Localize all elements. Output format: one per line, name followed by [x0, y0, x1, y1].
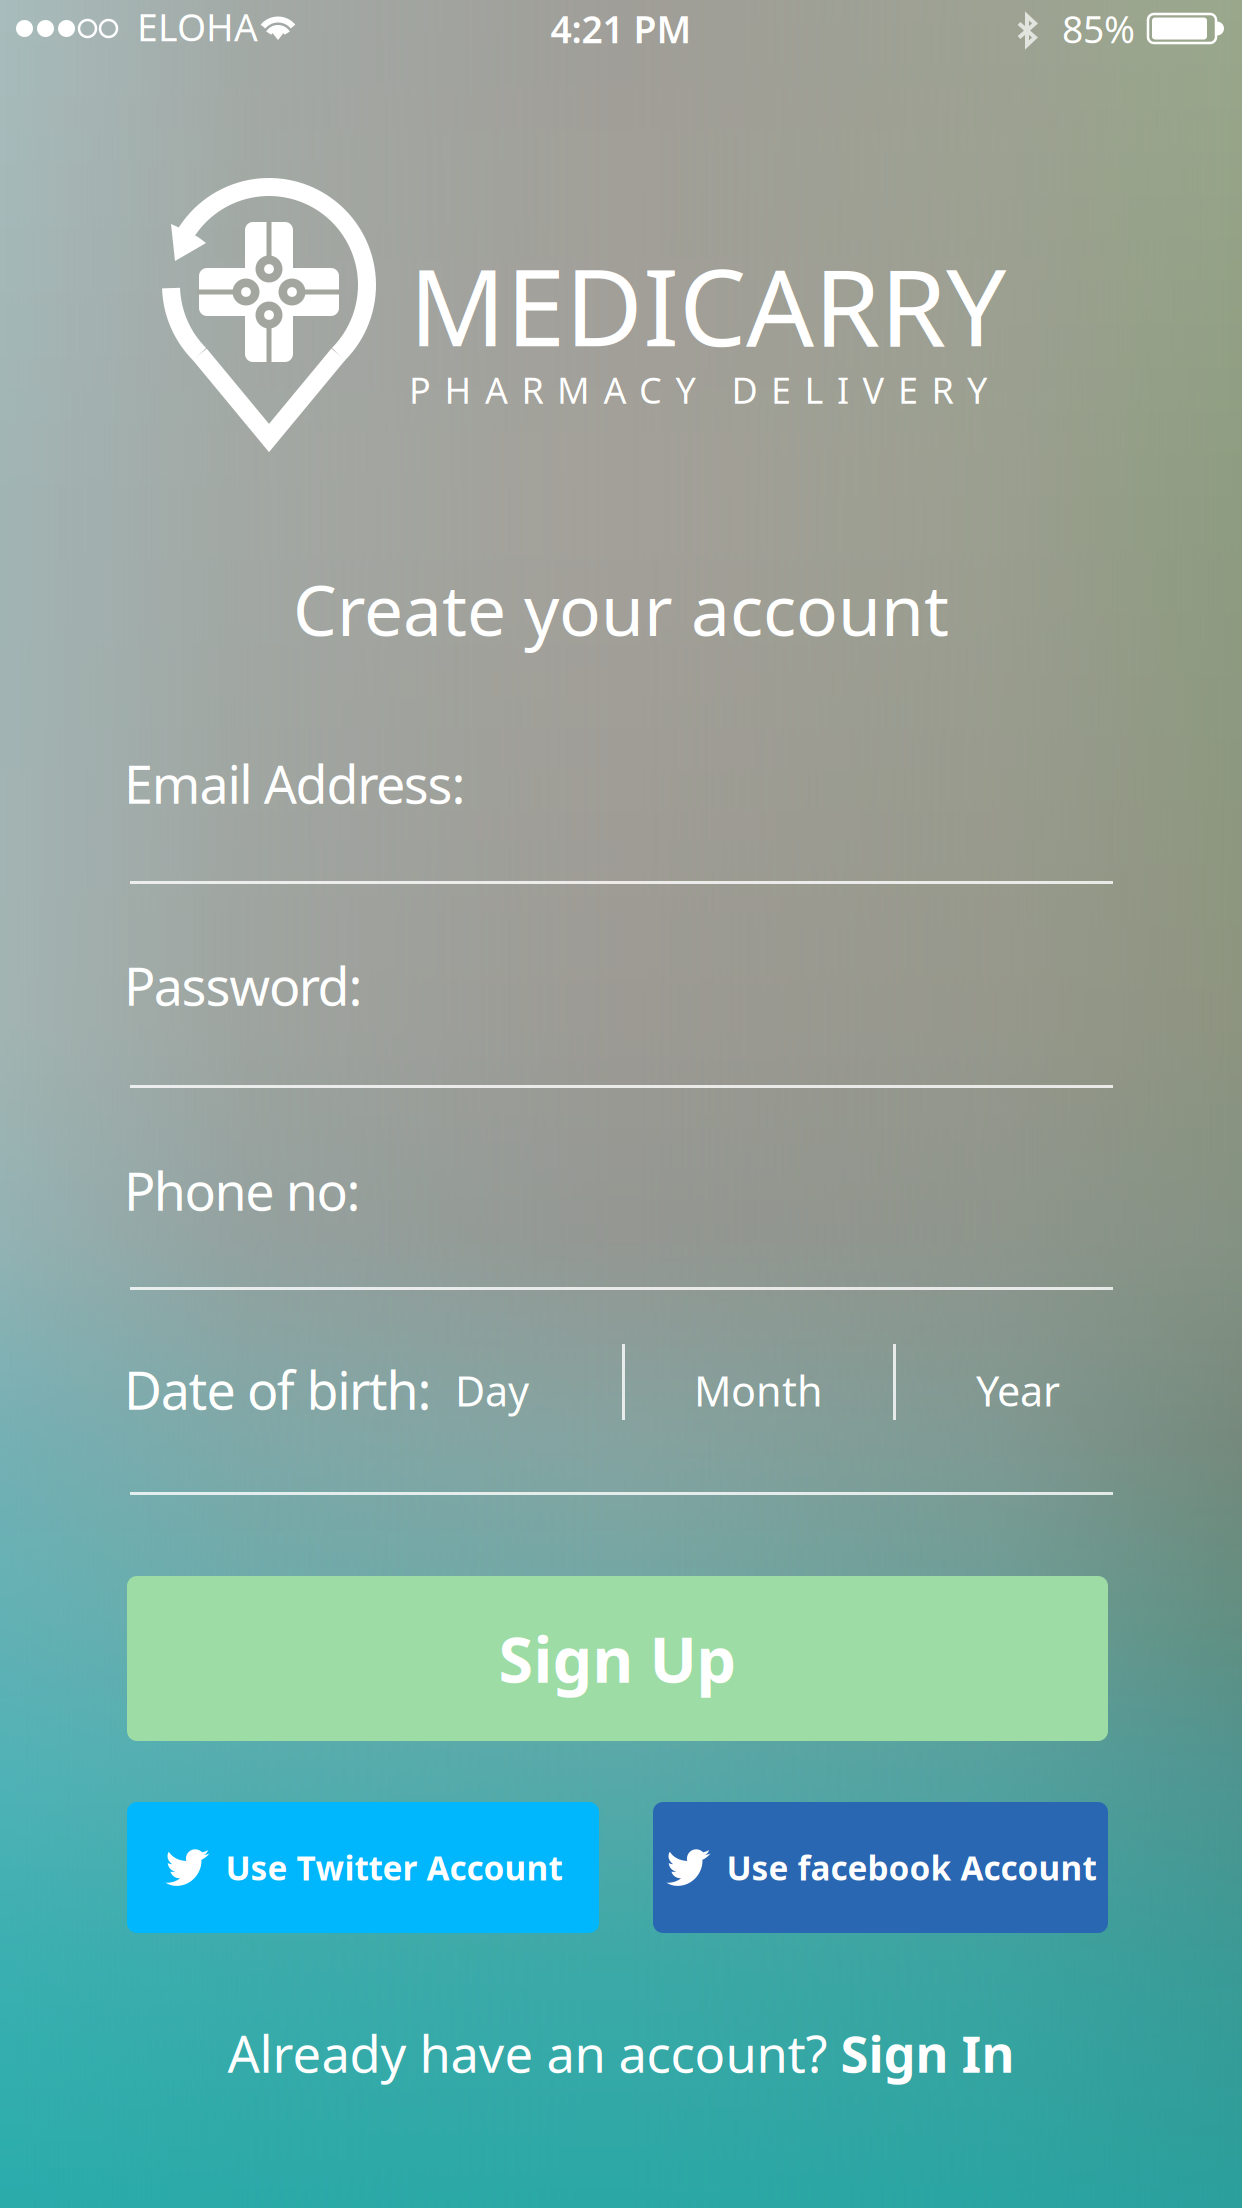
staticText: Email Address:	[124, 749, 465, 818]
staticText: Password:	[124, 951, 362, 1020]
button[interactable]: Use facebook Account	[653, 1802, 1108, 1933]
staticText: Use Twitter Account	[225, 1845, 562, 1890]
staticText: PHARMACY DELIVERY	[409, 366, 987, 414]
staticText: ELOHA	[137, 2, 258, 52]
staticText: Year	[976, 1363, 1060, 1418]
staticText: Month	[694, 1363, 823, 1418]
staticText: Already have an account?	[227, 2019, 840, 2087]
staticText: Use facebook Account	[726, 1845, 1096, 1890]
staticText: Sign In	[840, 2019, 1014, 2087]
button[interactable]: Already have an account?	[0, 2018, 1242, 2088]
staticText: MEDICARRY	[409, 234, 1006, 376]
button[interactable]: Sign Up	[127, 1576, 1108, 1741]
staticText: Date of birth:	[124, 1355, 431, 1424]
staticText: Create your account	[293, 563, 949, 655]
staticText: 85%	[1062, 4, 1135, 54]
button[interactable]: Use Twitter Account	[127, 1802, 599, 1933]
staticText: 4:21 PM	[550, 4, 691, 54]
staticText: Day	[455, 1363, 529, 1418]
staticText: Sign Up	[498, 1617, 736, 1700]
staticText: Phone no:	[124, 1156, 360, 1225]
